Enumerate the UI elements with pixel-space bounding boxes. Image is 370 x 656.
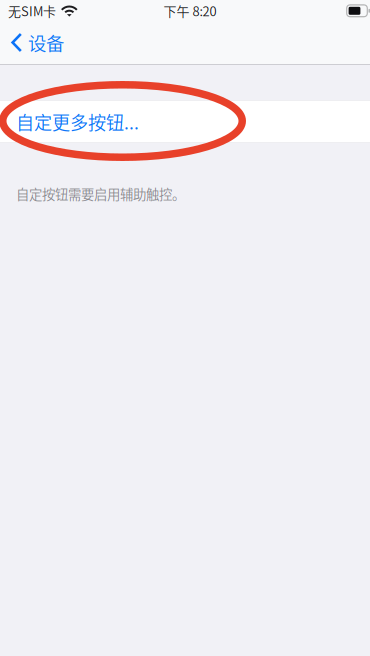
staticText: 自定更多按钮... [16, 108, 139, 135]
button[interactable]: 自定更多按钮... [0, 100, 370, 143]
staticText: 下午 8:20 [163, 1, 216, 20]
button[interactable]: 设备 [0, 24, 74, 64]
staticText: 无SIM卡 [8, 1, 56, 20]
staticText: 自定按钮需要启用辅助触控。 [16, 184, 185, 203]
staticText: 设备 [28, 29, 64, 56]
